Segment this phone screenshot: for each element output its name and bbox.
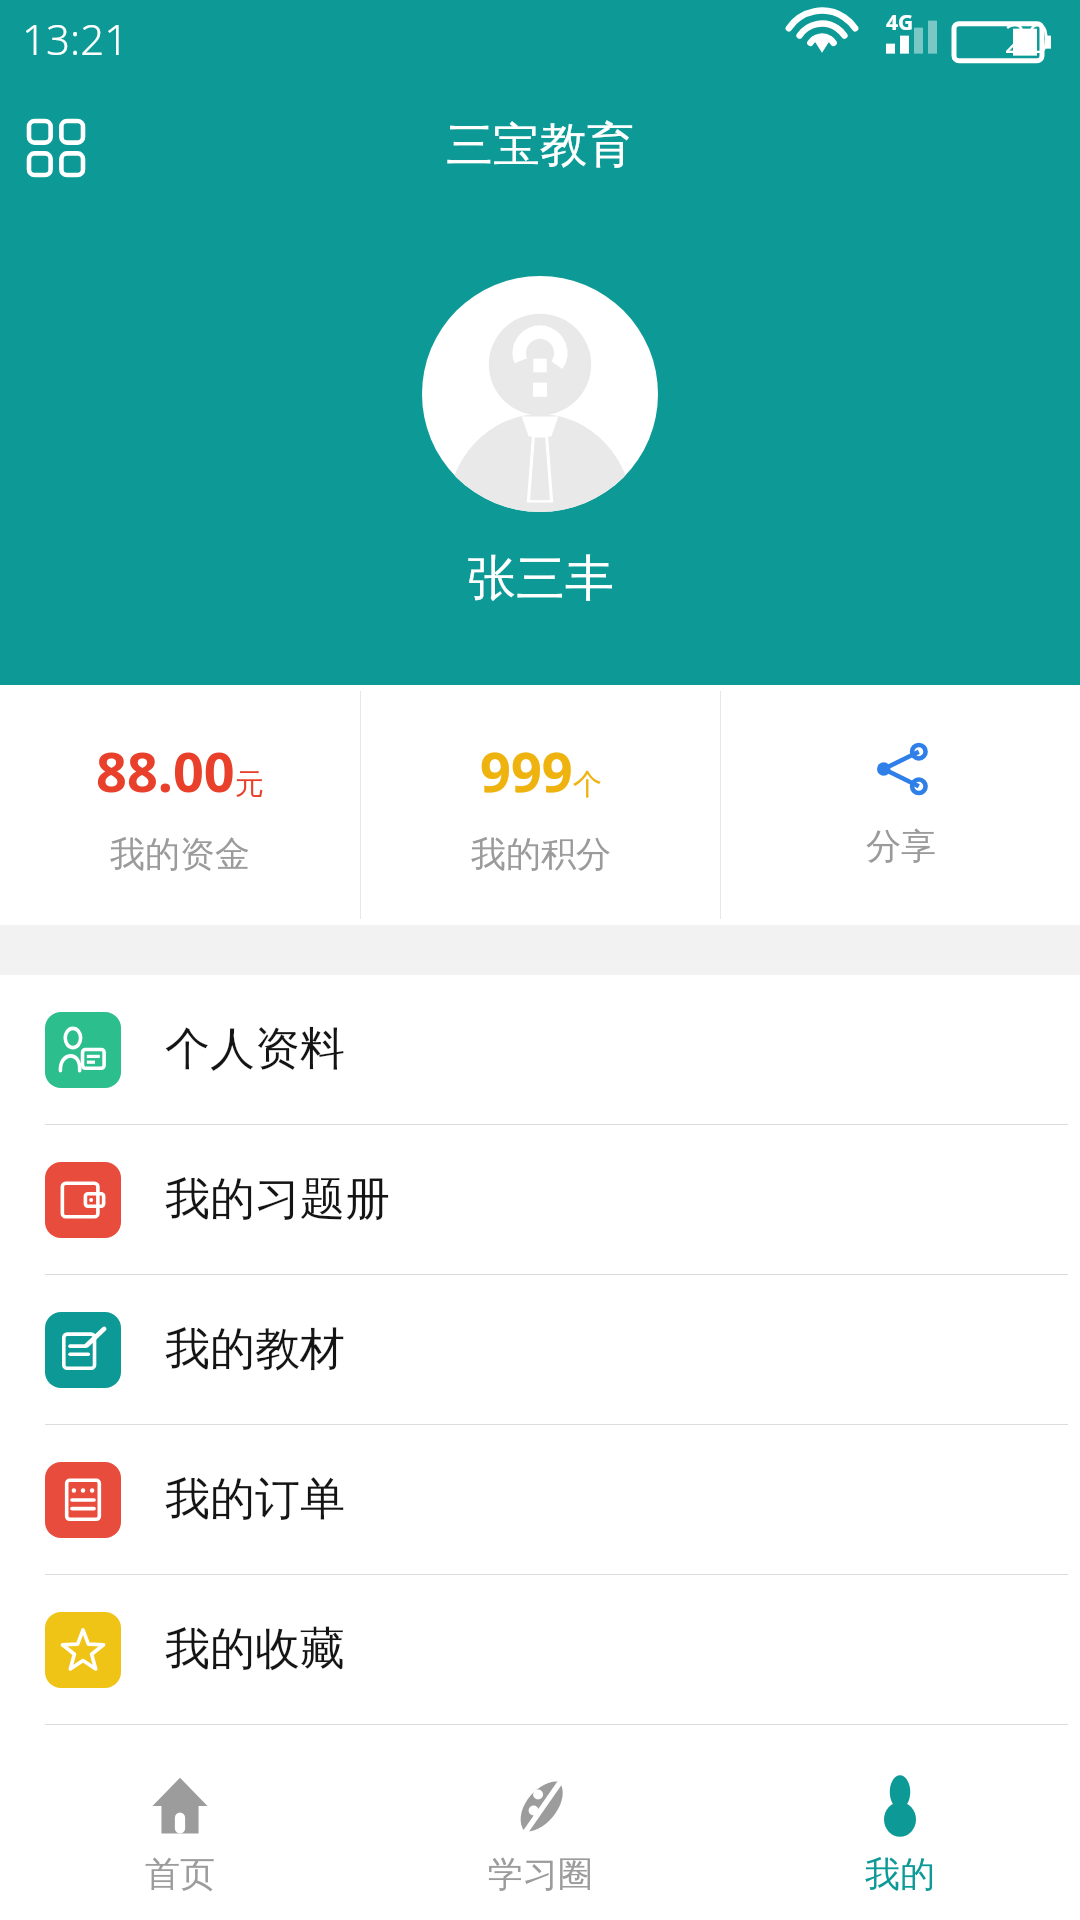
staticText: 张三丰: [467, 548, 614, 610]
button[interactable]: 88.00: [0, 685, 360, 925]
staticText: 我的收藏: [165, 1621, 345, 1678]
staticText: 学习圈: [488, 1852, 593, 1896]
staticText: 首页: [145, 1852, 215, 1896]
button[interactable]: 我的习题册: [0, 1125, 1080, 1274]
button[interactable]: 我的教材: [0, 1275, 1080, 1424]
staticText: 个: [573, 766, 602, 803]
button[interactable]: 我的: [720, 1750, 1080, 1920]
button[interactable]: 我的收藏: [0, 1575, 1080, 1724]
staticText: 元: [235, 766, 264, 803]
staticText: 我的积分: [471, 832, 611, 876]
staticText: 我的: [865, 1852, 935, 1896]
staticText: 个人资料: [165, 1021, 345, 1078]
button[interactable]: Grid menu: [12, 104, 100, 192]
staticText: 我的教材: [165, 1321, 345, 1378]
staticText: 999: [480, 734, 573, 808]
button[interactable]: 学习圈: [360, 1750, 720, 1920]
button[interactable]: 首页: [0, 1750, 360, 1920]
staticText: 4G: [886, 8, 914, 37]
staticText: 分享: [866, 824, 936, 868]
staticText: 我的习题册: [165, 1171, 390, 1228]
staticText: 13:21: [22, 10, 129, 67]
staticText: 20: [1004, 10, 1050, 64]
button[interactable]: 999: [361, 685, 720, 925]
button[interactable]: 个人资料: [0, 975, 1080, 1124]
staticText: 我的订单: [165, 1471, 345, 1528]
button[interactable]: 我的订单: [0, 1425, 1080, 1574]
staticText: 我的资金: [110, 832, 250, 876]
staticText: 三宝教育: [0, 116, 1080, 175]
button[interactable]: Profile photo: [422, 276, 658, 512]
staticText: 88.00: [96, 734, 235, 808]
button[interactable]: 分享: [721, 685, 1080, 925]
